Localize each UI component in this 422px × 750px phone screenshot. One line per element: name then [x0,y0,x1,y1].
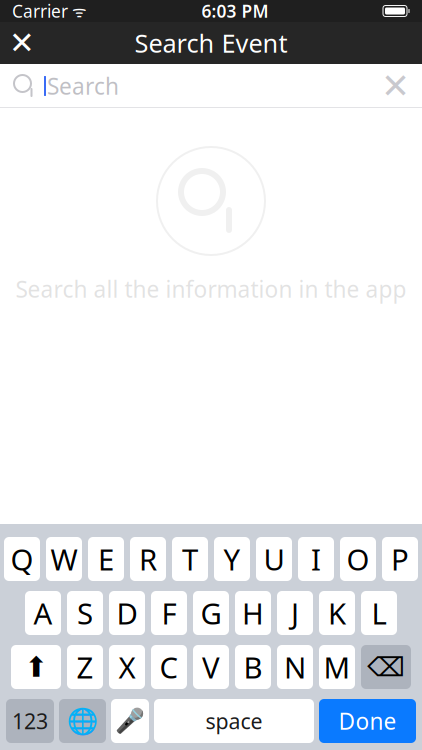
staticText: Done [338,706,396,736]
button[interactable]: 123 [6,699,54,743]
button[interactable]: Delete [361,645,411,689]
staticText: K [328,593,346,632]
staticText: S [77,593,93,632]
staticText: 6:03 PM [201,0,268,22]
button[interactable]: Close [0,22,44,64]
button[interactable]: T [172,537,208,581]
staticText: J [291,593,299,632]
staticText: 🎤 [115,707,145,735]
staticText: Carrier [12,0,68,22]
staticText: N [284,647,306,686]
button[interactable]: Y [214,537,250,581]
staticText: C [159,647,178,686]
button[interactable]: G [193,591,229,635]
staticText: M [323,647,350,686]
button[interactable]: U [256,537,292,581]
staticText: 🌐 [66,706,98,735]
button[interactable]: space [154,699,314,743]
button[interactable]: Done [319,699,416,743]
button[interactable]: R [130,537,166,581]
button[interactable]: X [109,645,145,689]
staticText: W [50,539,77,578]
staticText: 123 [12,707,48,735]
staticText: ✕ [381,66,410,106]
staticText: space [205,707,262,735]
button[interactable]: Z [67,645,103,689]
button[interactable]: Dictate [111,699,149,743]
button[interactable]: S [67,591,103,635]
staticText: Search Event [134,26,287,60]
button[interactable]: J [277,591,313,635]
button[interactable]: P [382,537,418,581]
button[interactable]: F [151,591,187,635]
button[interactable]: M [319,645,355,689]
button[interactable]: O [340,537,376,581]
button[interactable]: Shift [11,645,61,689]
staticText: Q [10,539,33,578]
button[interactable]: L [361,591,397,635]
staticText: ⌫ [367,652,405,682]
staticText: Search all the information in the app [15,274,406,304]
button[interactable]: Search [0,64,422,108]
button[interactable]: E [88,537,124,581]
staticText: T [182,539,198,578]
button[interactable]: A [25,591,61,635]
staticText: E [98,539,114,578]
staticText: Z [76,647,93,686]
staticText: O [346,539,369,578]
staticText: I [311,539,321,578]
button[interactable]: D [109,591,145,635]
staticText: Y [223,539,240,578]
staticText: R [139,539,157,578]
staticText: G [200,593,221,632]
staticText: H [242,593,264,632]
button[interactable]: Next keyboard [59,699,106,743]
staticText: ✕ [9,26,35,60]
staticText: P [391,539,409,578]
staticText: ⬆ [24,651,47,683]
staticText: V [202,647,220,686]
staticText: X [118,647,135,686]
button[interactable]: I [298,537,334,581]
button[interactable]: C [151,645,187,689]
button[interactable]: Q [4,537,40,581]
staticText: D [116,593,137,632]
staticText: L [371,593,386,632]
button[interactable]: V [193,645,229,689]
staticText: ᯤ [68,0,87,22]
button[interactable]: K [319,591,355,635]
button[interactable]: B [235,645,271,689]
staticText: A [33,593,52,632]
button[interactable]: N [277,645,313,689]
button[interactable]: H [235,591,271,635]
staticText: U [263,539,284,578]
staticText: Search [47,71,119,101]
button[interactable]: W [46,537,82,581]
staticText: F [161,593,176,632]
staticText: B [243,647,262,686]
